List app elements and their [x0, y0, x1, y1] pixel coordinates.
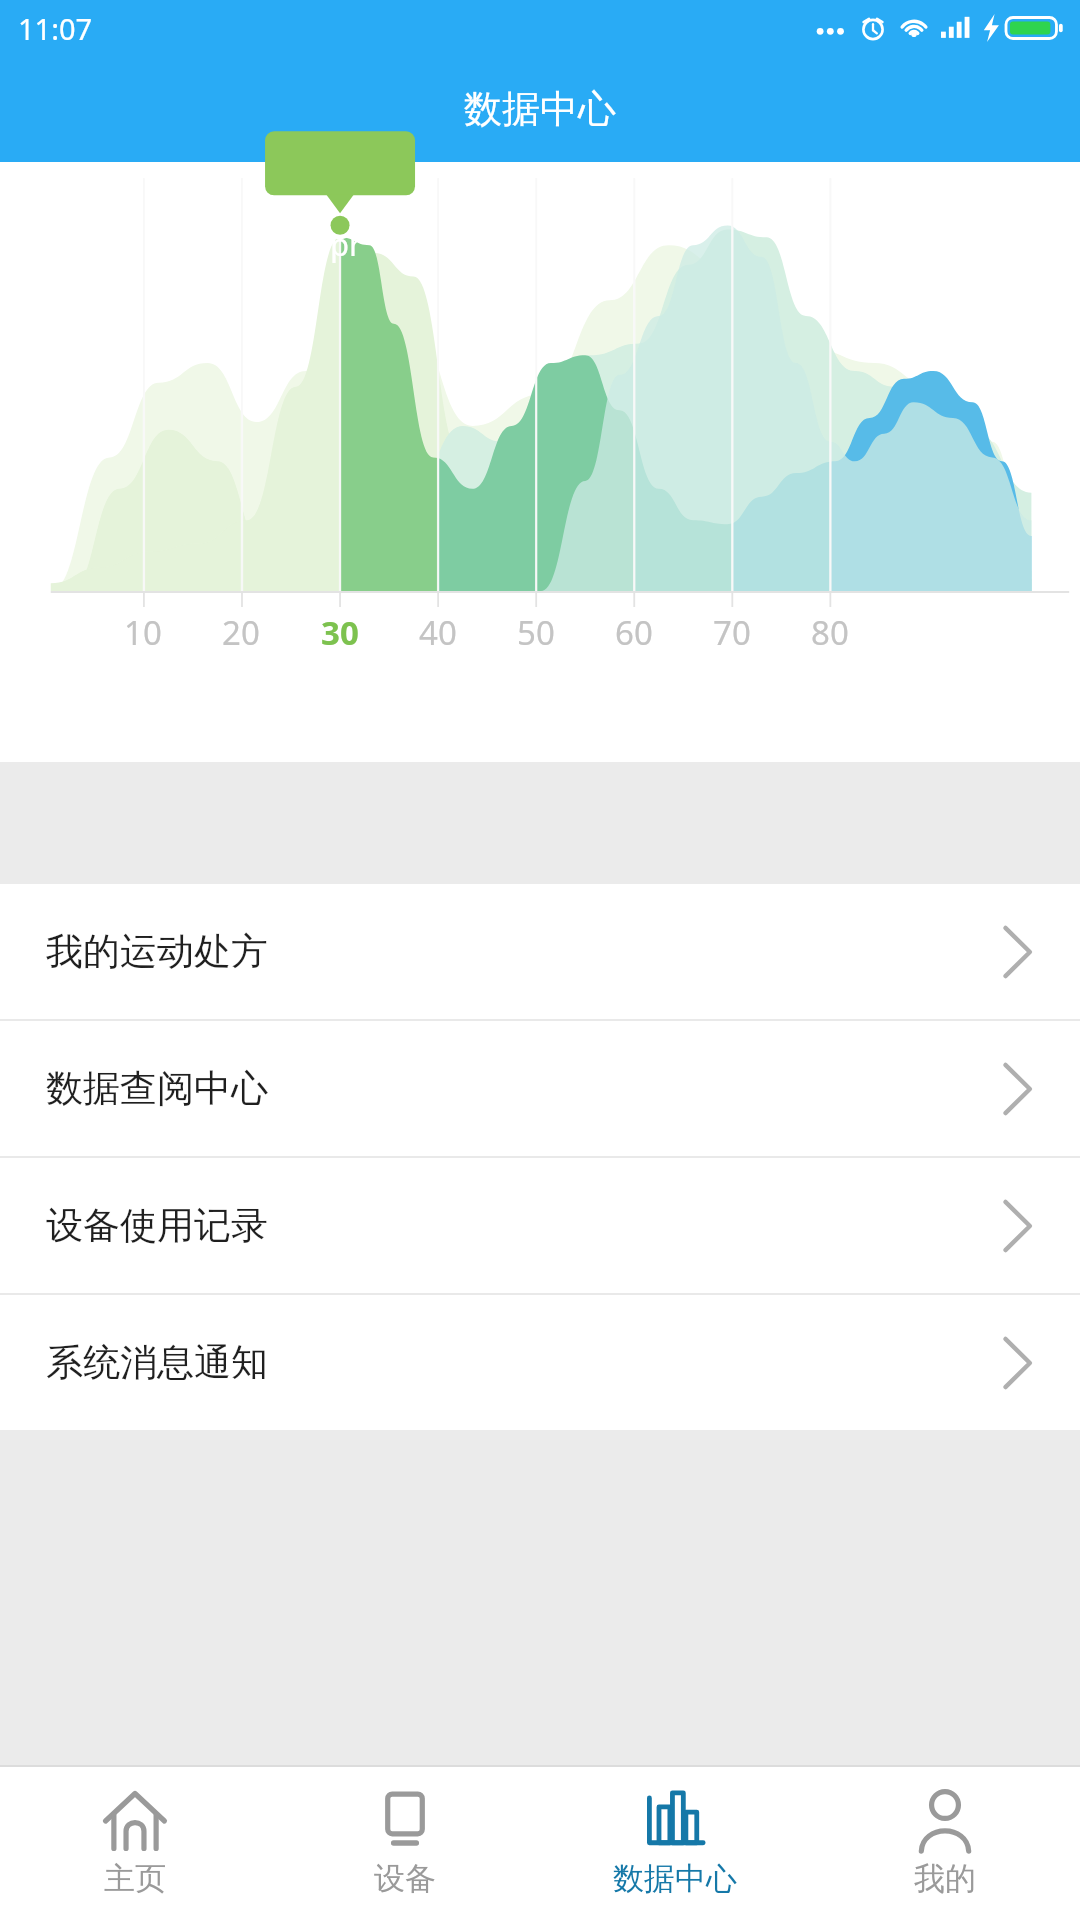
- staticText: 40: [408, 610, 468, 655]
- staticText: 80: [800, 610, 860, 655]
- button[interactable]: 主页: [0, 1767, 270, 1920]
- staticText: 10: [113, 610, 173, 655]
- staticText: 我的: [914, 1859, 976, 1898]
- staticText: 70: [702, 610, 762, 655]
- staticText: 23 apr: [269, 223, 362, 265]
- staticText: 60: [604, 610, 664, 655]
- button[interactable]: 数据中心: [540, 1767, 810, 1920]
- staticText: 11:07: [18, 9, 93, 48]
- button[interactable]: 我的: [810, 1767, 1080, 1920]
- staticText: 50: [506, 610, 566, 655]
- staticText: 30: [310, 610, 370, 655]
- button[interactable]: 系统消息通知: [0, 1295, 1080, 1430]
- button[interactable]: 设备使用记录: [0, 1158, 1080, 1293]
- staticText: 20: [211, 610, 271, 655]
- staticText: 数据中心: [613, 1859, 737, 1898]
- button[interactable]: 我的运动处方: [0, 884, 1080, 1019]
- staticText: 数据中心: [464, 85, 616, 133]
- staticText: 设备使用记录: [46, 1202, 1000, 1249]
- staticText: 主页: [104, 1859, 166, 1898]
- staticText: 我的运动处方: [46, 928, 1000, 975]
- button[interactable]: 设备: [270, 1767, 540, 1920]
- staticText: 数据查阅中心: [46, 1065, 1000, 1112]
- button[interactable]: 数据查阅中心: [0, 1021, 1080, 1156]
- staticText: 设备: [374, 1859, 436, 1898]
- staticText: 系统消息通知: [46, 1339, 1000, 1386]
